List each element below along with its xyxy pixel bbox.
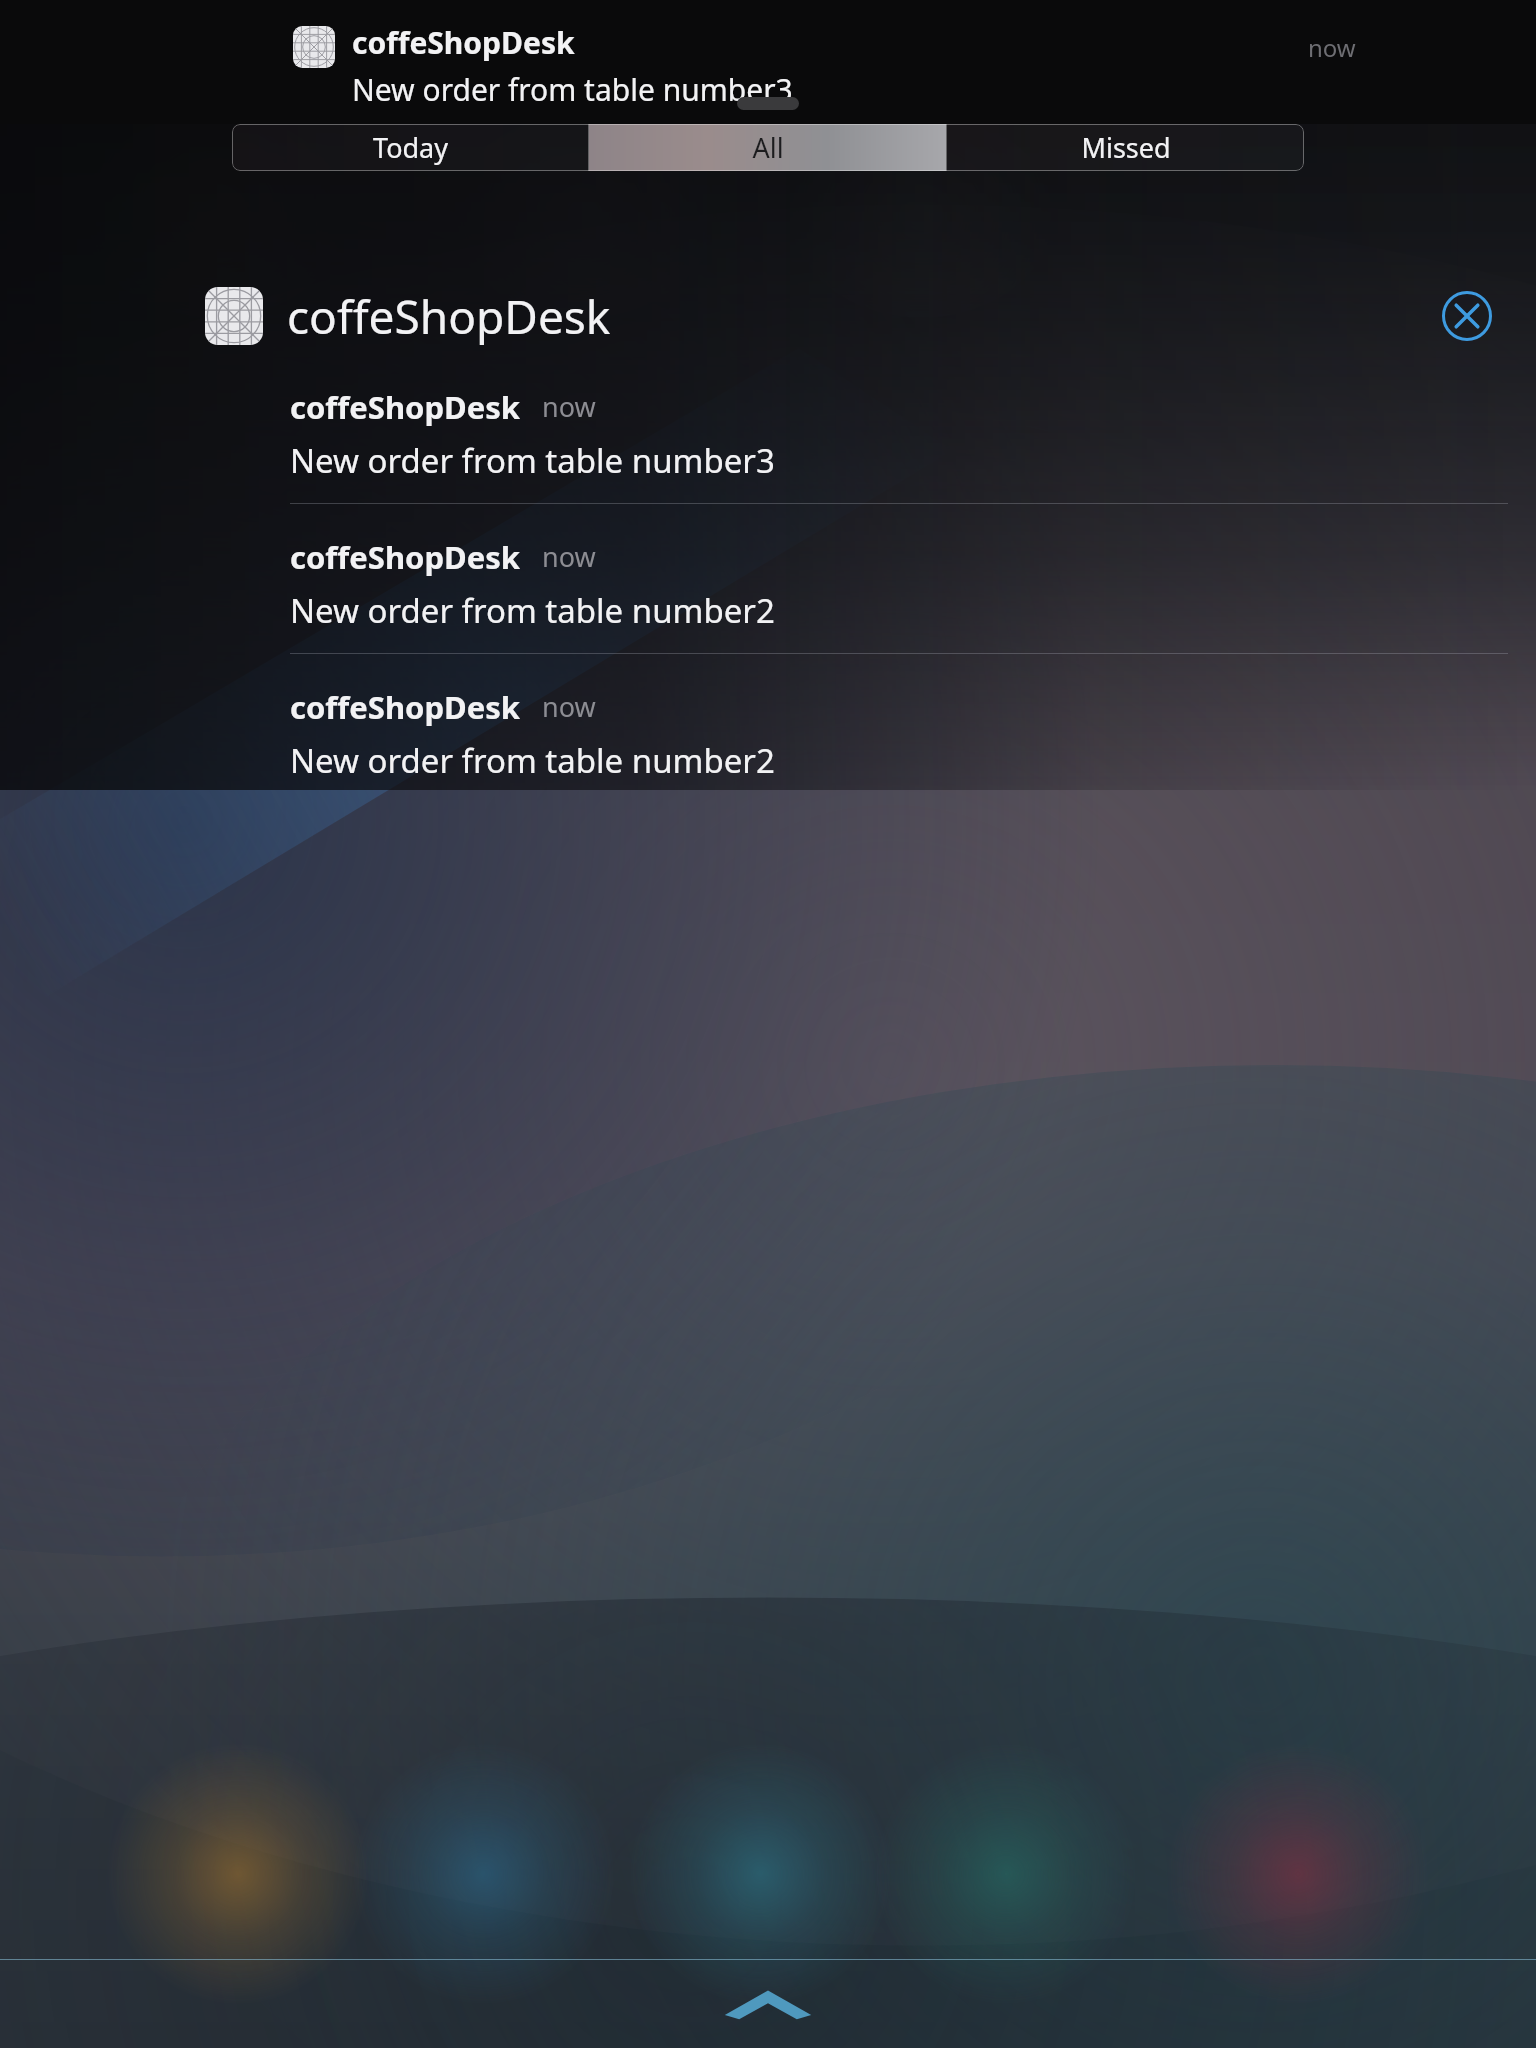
button[interactable]: Missed (947, 124, 1304, 171)
staticText: now (542, 688, 596, 725)
button[interactable]: All (589, 124, 946, 171)
staticText: Missed (1081, 129, 1171, 166)
button[interactable]: Close Notification Center (0, 1960, 1536, 2048)
staticText: now (1308, 31, 1356, 64)
button[interactable]: coffeShopDesk (0, 22, 1536, 110)
button[interactable]: coffeShopDesk (205, 278, 1496, 354)
staticText: now (542, 538, 596, 575)
button[interactable]: coffeShopDesk (0, 354, 1536, 503)
staticText: New order from table number2 (290, 738, 775, 783)
button[interactable]: Clear notifications (1438, 287, 1496, 345)
staticText: New order from table number3 (290, 438, 775, 483)
staticText: New order from table number2 (290, 588, 775, 633)
staticText: New order from table number3 (352, 69, 793, 110)
button[interactable]: coffeShopDesk (0, 504, 1536, 653)
staticText: now (542, 388, 596, 425)
staticText: coffeShopDesk (290, 686, 520, 728)
staticText: Today (373, 129, 448, 166)
button[interactable]: Today (232, 124, 588, 171)
staticText: All (752, 129, 784, 166)
staticText: coffeShopDesk (290, 386, 520, 428)
button[interactable]: coffeShopDesk (0, 654, 1536, 803)
staticText: coffeShopDesk (352, 22, 575, 63)
staticText: coffeShopDesk (287, 285, 611, 348)
staticText: coffeShopDesk (290, 536, 520, 578)
